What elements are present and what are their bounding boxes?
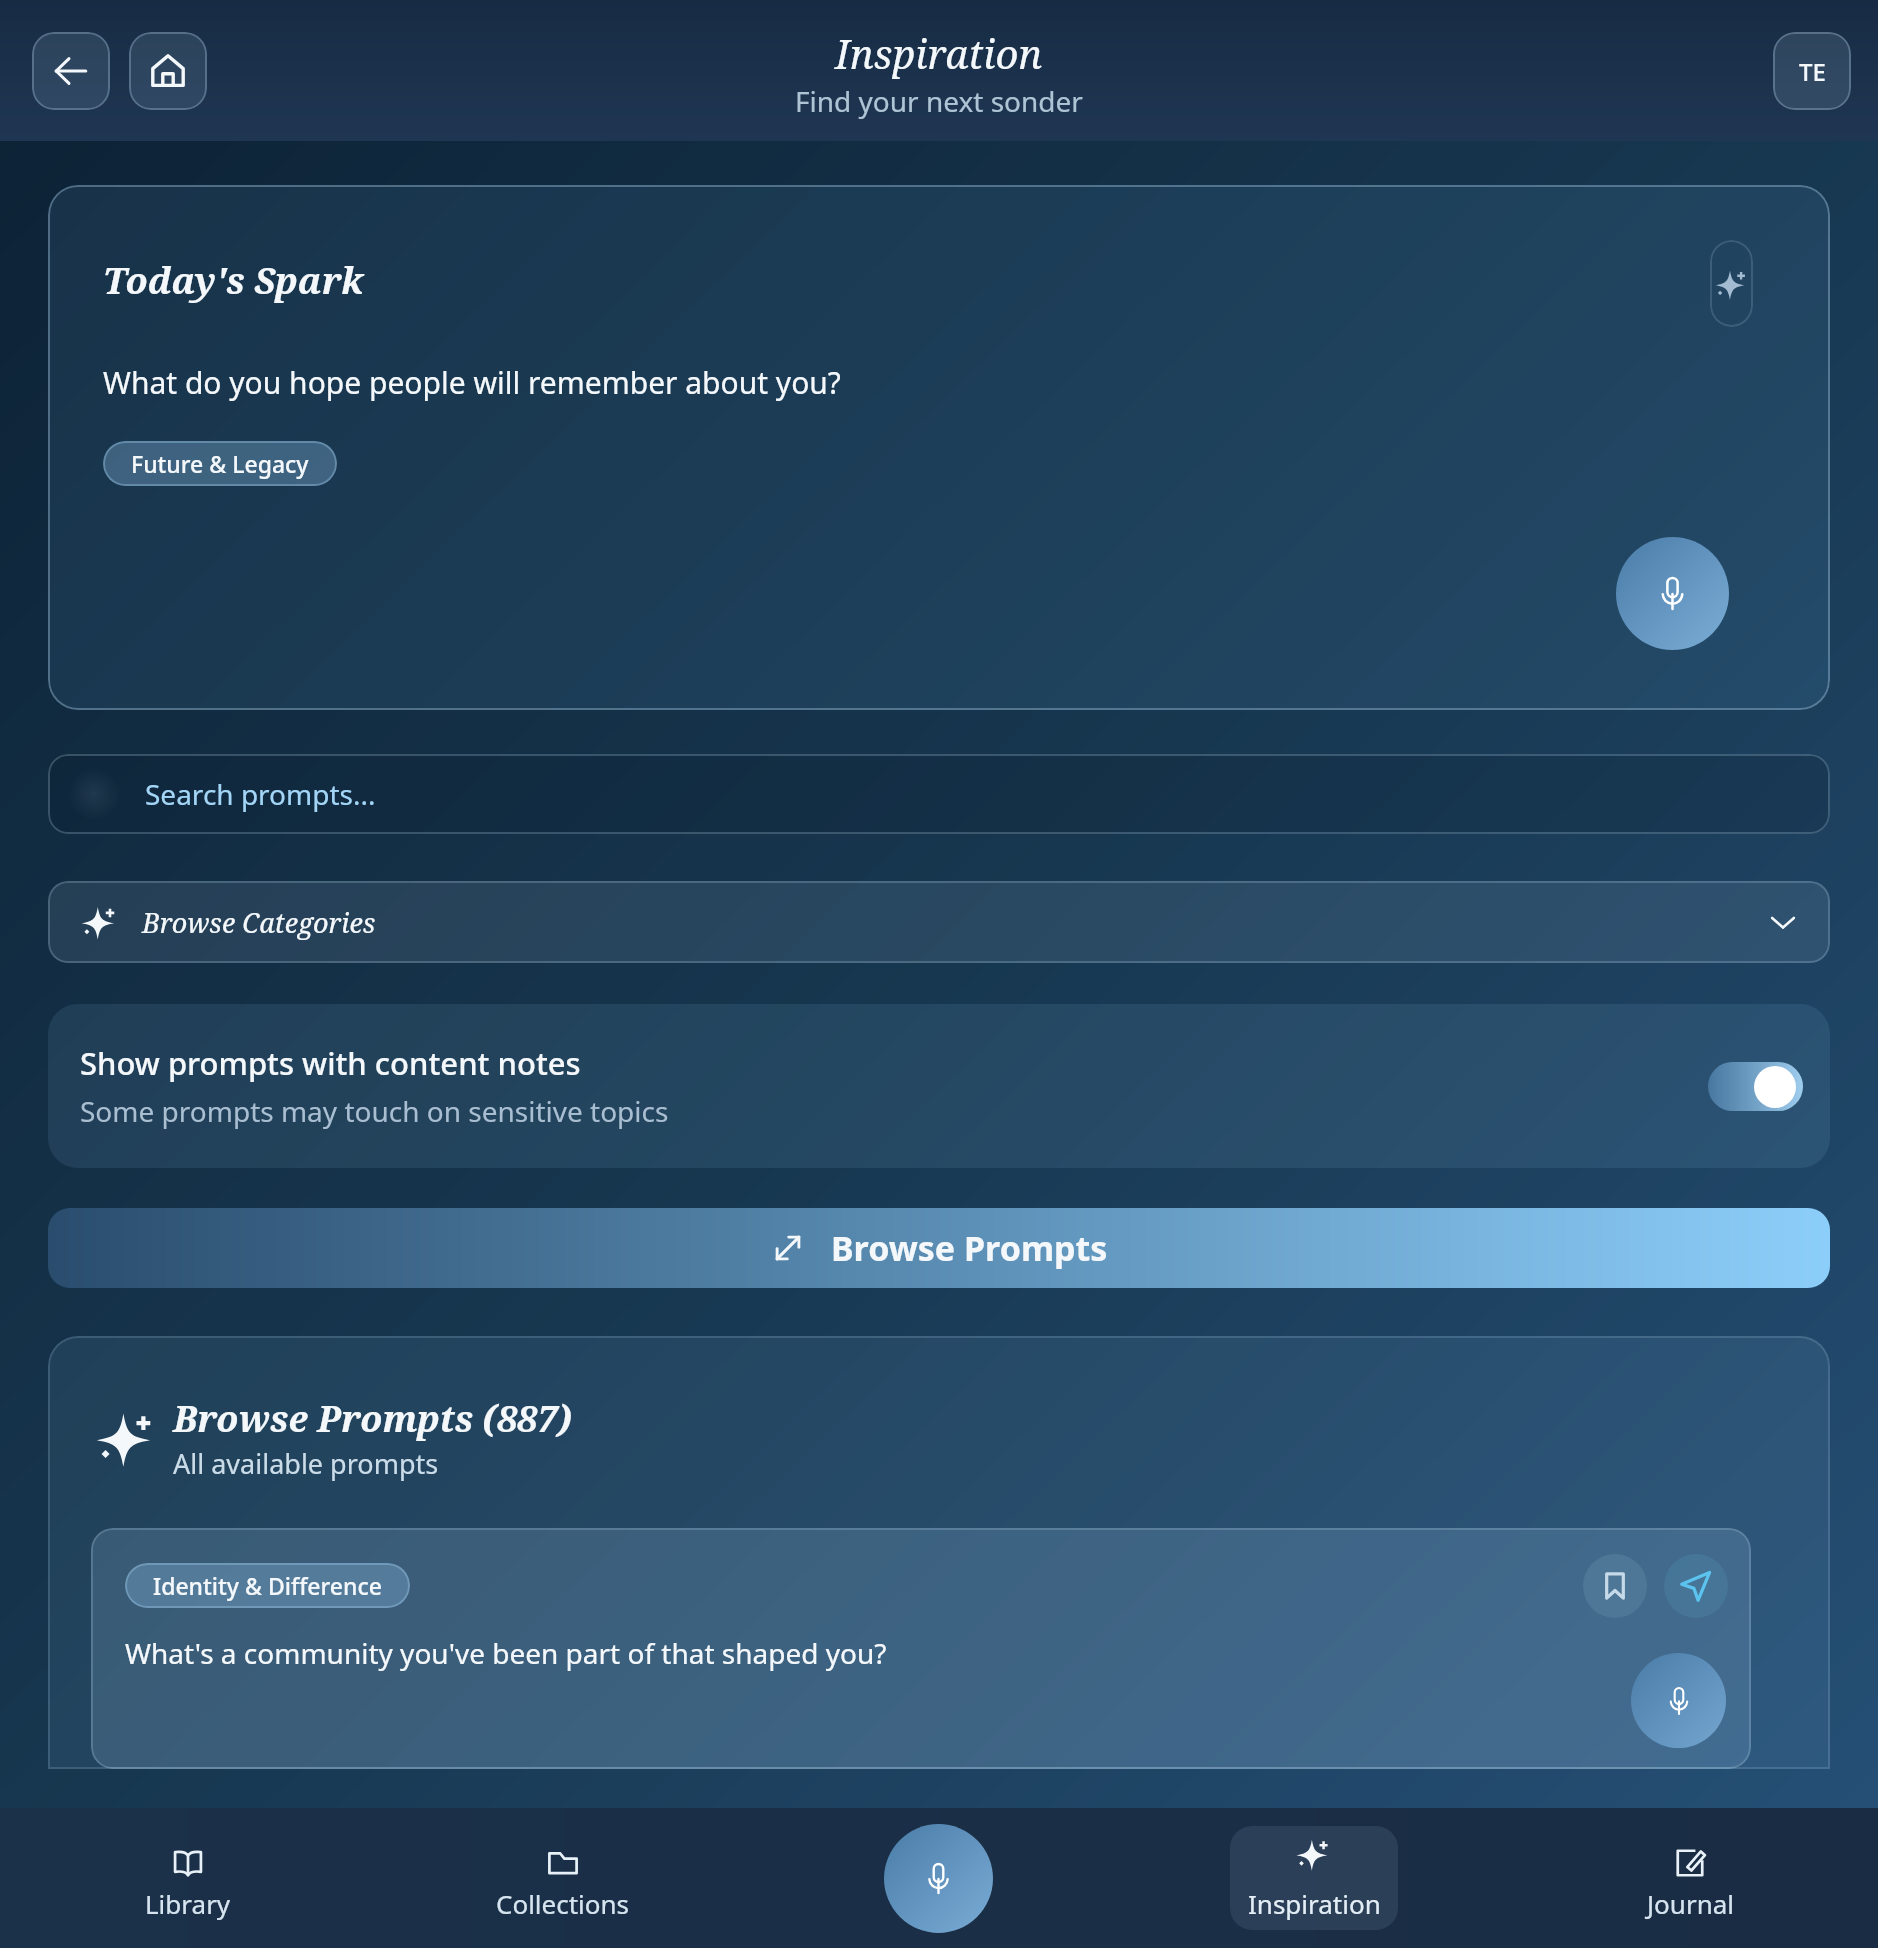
staticText: Inspiration [1248,1886,1381,1921]
button[interactable]: Bookmark [1583,1554,1647,1618]
button[interactable]: Identity & Difference [91,1528,1751,1769]
button[interactable]: Back [32,32,110,110]
staticText: Browse Prompts (887) [173,1394,572,1443]
button[interactable]: Show prompts with content notes [48,1004,1830,1168]
staticText: Today's Spark [103,256,364,305]
button[interactable]: Browse Prompts [48,1208,1830,1288]
button[interactable]: Today's Spark [48,185,1830,710]
staticText: TE [1799,55,1826,88]
staticText: Some prompts may touch on sensitive topi… [80,1092,669,1130]
staticText: Find your next sonder [795,82,1083,120]
staticText: All available prompts [173,1445,439,1482]
button[interactable]: Send [1664,1554,1728,1618]
staticText: Browse Categories [142,904,376,941]
staticText: Inspiration [835,26,1043,80]
staticText: What's a community you've been part of t… [125,1634,887,1672]
button[interactable]: Browse Categories [48,881,1830,963]
button[interactable]: Search prompts... [48,754,1830,834]
button[interactable]: Journal [1502,1829,1878,1927]
staticText: Show prompts with content notes [80,1042,581,1084]
staticText: Collections [496,1886,630,1921]
button[interactable]: Record voice note [1616,537,1729,650]
staticText: Journal [1647,1886,1734,1921]
staticText: Browse Prompts [831,1225,1108,1271]
button[interactable] [1708,1062,1803,1111]
staticText: Future & Legacy [131,448,309,479]
staticText: What do you hope people will remember ab… [103,362,841,403]
button[interactable]: Start voice recording [884,1824,993,1933]
staticText: Identity & Difference [153,1570,382,1601]
button[interactable]: Collections [375,1829,750,1927]
staticText: Library [145,1886,231,1921]
button[interactable]: Record voice note [1631,1653,1726,1748]
button[interactable]: TE [1773,32,1851,110]
button[interactable]: Library [0,1829,375,1927]
button[interactable]: Inspiration [1230,1826,1398,1930]
staticText: Search prompts... [145,775,376,813]
button[interactable]: Generate new spark [1710,240,1753,327]
button[interactable]: Home [129,32,207,110]
